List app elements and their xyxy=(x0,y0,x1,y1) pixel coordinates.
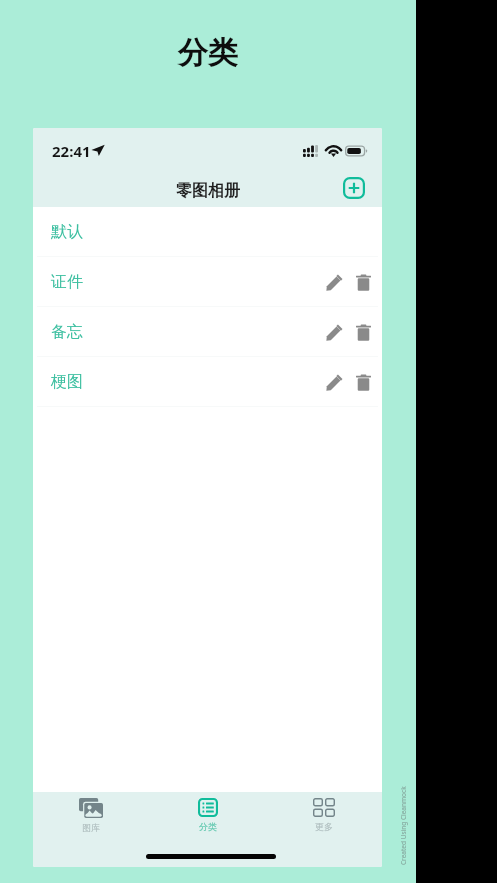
staticText: 图库 xyxy=(82,822,100,833)
staticText: 备忘 xyxy=(51,322,83,342)
staticText: 证件 xyxy=(51,272,83,292)
button[interactable]: 分类 xyxy=(160,798,256,832)
button[interactable]: Delete xyxy=(349,318,377,346)
staticText: 分类 xyxy=(178,34,238,72)
button[interactable]: 默认 xyxy=(33,207,382,257)
staticText: 22:41 xyxy=(52,141,91,161)
button[interactable]: Delete xyxy=(349,368,377,396)
staticText: 更多 xyxy=(315,821,333,832)
button[interactable]: 备忘 xyxy=(33,307,382,357)
staticText: 默认 xyxy=(51,222,83,242)
button[interactable]: 证件 xyxy=(33,257,382,307)
button[interactable]: 更多 xyxy=(276,798,372,832)
button[interactable]: 图库 xyxy=(43,798,139,833)
button[interactable]: Edit xyxy=(320,368,348,396)
staticText: Created Using Cleanmock xyxy=(399,786,408,865)
button[interactable]: Edit xyxy=(320,268,348,296)
staticText: 梗图 xyxy=(51,372,83,392)
button[interactable]: Add album xyxy=(339,173,369,203)
button[interactable]: Edit xyxy=(320,318,348,346)
staticText: 零图相册 xyxy=(176,181,240,201)
button[interactable]: Delete xyxy=(349,268,377,296)
button[interactable]: 梗图 xyxy=(33,357,382,407)
staticText: 分类 xyxy=(199,821,217,832)
